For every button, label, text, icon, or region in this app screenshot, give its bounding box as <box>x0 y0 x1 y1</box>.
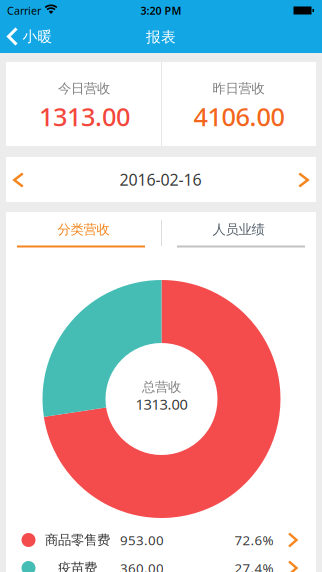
staticText: 360.00 <box>120 559 164 572</box>
staticText: 今日营收 <box>58 80 110 97</box>
staticText: 1313.00 <box>39 100 130 133</box>
staticText: 报表 <box>146 28 176 46</box>
staticText: 昨日营收 <box>212 80 264 97</box>
button[interactable]: 人员业绩 <box>173 214 303 244</box>
staticText: 人员业绩 <box>212 221 264 238</box>
staticText: 953.00 <box>120 531 164 549</box>
button[interactable]: 商品零售费 <box>11 526 311 554</box>
button[interactable]: 小暖 <box>6 27 52 46</box>
button[interactable]: 分类营收 <box>18 214 148 244</box>
staticText: Carrier <box>7 3 41 18</box>
staticText: 4106.00 <box>193 100 284 133</box>
staticText: 商品零售费 <box>45 532 110 548</box>
staticText: 2016-02-16 <box>119 169 201 190</box>
staticText: 总营收 <box>142 379 181 395</box>
button[interactable]: 疫苗费 <box>11 554 311 572</box>
button[interactable]: Next day <box>298 172 309 188</box>
staticText: 分类营收 <box>57 221 109 238</box>
button[interactable]: Previous day <box>13 172 24 188</box>
staticText: 27.4% <box>234 559 273 572</box>
staticText: 疫苗费 <box>58 560 97 572</box>
staticText: 3:20 PM <box>140 3 181 18</box>
staticText: 72.6% <box>234 531 273 549</box>
staticText: 小暖 <box>22 27 52 45</box>
staticText: 1313.00 <box>135 394 187 414</box>
